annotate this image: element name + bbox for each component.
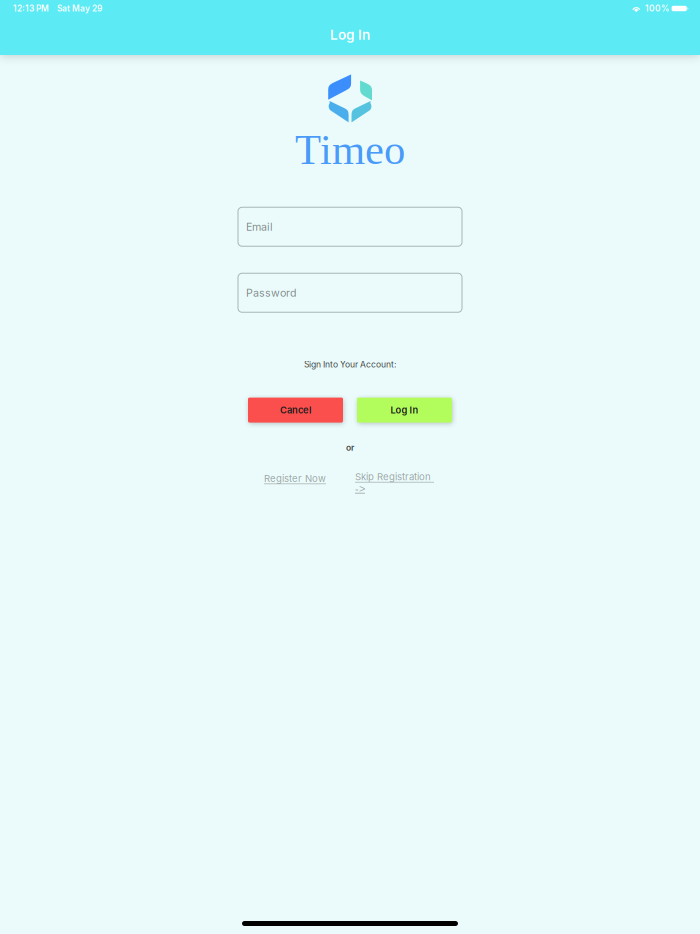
staticText: Cancel: [280, 404, 311, 416]
staticText: Password: [246, 286, 297, 299]
staticText: 100%: [645, 3, 669, 14]
staticText: Timeo: [295, 126, 405, 173]
staticText: Email: [246, 220, 273, 233]
button[interactable]: Log In: [357, 398, 452, 423]
staticText: 12:13 PM: [13, 3, 49, 14]
staticText: Sign Into Your Account:: [304, 359, 396, 370]
staticText: Sat May 29: [57, 3, 102, 14]
staticText: or: [346, 443, 354, 453]
button[interactable]: Skip Registration: [355, 471, 446, 495]
button[interactable]: Cancel: [248, 398, 343, 423]
button[interactable]: Register Now: [264, 471, 355, 486]
staticText: Log In: [330, 26, 370, 43]
staticText: Log In: [390, 404, 418, 416]
staticText: Register Now: [264, 473, 326, 484]
staticText: ->: [355, 482, 365, 495]
staticText: Skip Registration: [355, 471, 434, 482]
